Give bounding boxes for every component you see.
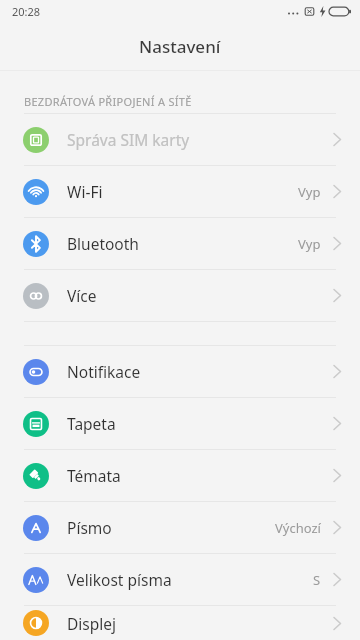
staticText: Velikost písma [67,569,172,590]
staticText: Témata [67,465,121,486]
button[interactable]: SIM card management [0,114,360,165]
other: Display [23,610,49,636]
staticText: 20:28 [12,4,41,19]
other: More [23,283,49,309]
staticText: Více [67,285,97,306]
button[interactable]: Themes [0,450,360,501]
button[interactable]: Bluetooth [0,218,360,269]
other: Font [23,515,49,541]
other: Font size [23,567,49,593]
staticText: S [313,571,321,589]
staticText: Tapeta [67,413,116,434]
other: SIM card management [23,127,49,153]
staticText: Výchozí [275,519,321,537]
staticText: Notifikace [67,361,141,382]
staticText: Bluetooth [67,233,139,254]
other: Bluetooth [23,231,49,257]
staticText: Správa SIM karty [67,129,190,150]
other: Wallpaper [23,411,49,437]
button[interactable]: Wi-Fi [0,166,360,217]
other: Notifications [23,359,49,385]
other: Wi-Fi [23,179,49,205]
staticText: Vyp [298,183,321,201]
button[interactable]: Font size [0,554,360,605]
button[interactable]: Wallpaper [0,398,360,449]
button[interactable]: More [0,270,360,321]
staticText: Wi-Fi [67,181,103,202]
staticText: Displej [67,613,117,634]
staticText: BEZDRÁTOVÁ PŘIPOJENÍ A SÍTĚ [24,94,192,109]
other: Themes [23,463,49,489]
staticText: Písmo [67,517,112,538]
button[interactable]: Notifications [0,346,360,397]
staticText: Vyp [298,235,321,253]
button[interactable]: Display [0,606,360,640]
staticText: Nastavení [139,35,221,58]
button[interactable]: Font [0,502,360,553]
